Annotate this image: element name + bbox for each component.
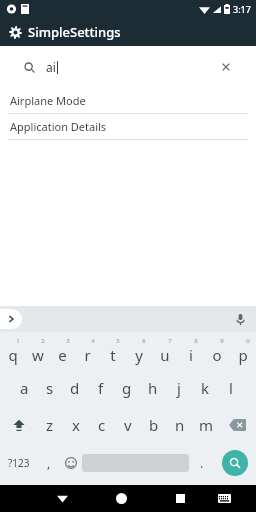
staticText: l xyxy=(229,378,233,398)
staticText: i xyxy=(189,345,193,365)
staticText: a xyxy=(20,378,29,398)
staticText: , xyxy=(47,455,51,471)
staticText: k xyxy=(201,378,210,398)
button[interactable]: b xyxy=(141,406,167,443)
button[interactable]: Application Details xyxy=(0,114,256,139)
button[interactable]: Backspace xyxy=(219,406,256,443)
other: Search xyxy=(24,62,35,73)
staticText: b xyxy=(149,415,159,435)
staticText: 7 xyxy=(168,337,172,345)
staticText: u xyxy=(160,345,170,365)
button[interactable]: f xyxy=(88,369,114,406)
button[interactable]: s xyxy=(37,369,62,406)
button[interactable]: 4 xyxy=(75,332,100,369)
button[interactable]: Expand suggestions xyxy=(0,309,22,329)
button[interactable]: g xyxy=(114,369,140,406)
button[interactable]: 8 xyxy=(178,332,204,369)
staticText: q xyxy=(8,345,18,365)
staticText: w xyxy=(32,345,44,365)
staticText: 0 xyxy=(246,337,250,345)
button[interactable]: x xyxy=(63,406,89,443)
button[interactable]: Back xyxy=(46,485,79,512)
button[interactable]: 9 xyxy=(204,332,230,369)
button[interactable]: 0 xyxy=(230,332,256,369)
staticText: j xyxy=(177,378,181,398)
staticText: . xyxy=(200,455,204,471)
button[interactable]: Emoji xyxy=(60,443,82,483)
button[interactable]: l xyxy=(218,369,244,406)
staticText: s xyxy=(46,378,54,398)
staticText: g xyxy=(122,378,132,398)
staticText: SimpleSettings xyxy=(28,23,121,41)
staticText: z xyxy=(46,415,54,435)
button[interactable]: k xyxy=(192,369,218,406)
button[interactable]: 7 xyxy=(152,332,178,369)
button[interactable]: Search xyxy=(14,53,242,81)
staticText: 9 xyxy=(220,337,224,345)
staticText: ai xyxy=(46,59,56,75)
button[interactable]: Recent apps xyxy=(164,485,197,512)
button[interactable]: ?123 xyxy=(0,443,38,483)
staticText: n xyxy=(175,415,185,435)
button[interactable]: d xyxy=(62,369,88,406)
button[interactable]: v xyxy=(115,406,141,443)
staticText: e xyxy=(58,345,67,365)
staticText: 2 xyxy=(41,337,45,345)
button[interactable]: Shift xyxy=(0,406,37,443)
button[interactable]: Clear search xyxy=(220,61,232,73)
staticText: x xyxy=(72,415,80,435)
button[interactable]: Airplane Mode xyxy=(0,88,256,113)
button[interactable]: a xyxy=(12,369,37,406)
staticText: h xyxy=(148,378,158,398)
button[interactable]: m xyxy=(193,406,219,443)
staticText: y xyxy=(135,345,143,365)
staticText: 8 xyxy=(194,337,198,345)
staticText: p xyxy=(238,345,248,365)
button[interactable]: c xyxy=(89,406,115,443)
staticText: 1 xyxy=(16,337,20,345)
staticText: Application Details xyxy=(10,119,107,134)
staticText: m xyxy=(199,415,214,435)
button[interactable]: 2 xyxy=(25,332,50,369)
button[interactable]: n xyxy=(167,406,193,443)
button[interactable]: Voice input xyxy=(232,311,248,327)
staticText: o xyxy=(212,345,222,365)
staticText: 5 xyxy=(116,337,120,345)
staticText: 3 xyxy=(66,337,70,345)
staticText: t xyxy=(110,345,116,365)
staticText: r xyxy=(84,345,91,365)
staticText: Airplane Mode xyxy=(10,93,86,108)
staticText: d xyxy=(70,378,80,398)
button[interactable]: 6 xyxy=(126,332,152,369)
button[interactable]: h xyxy=(140,369,166,406)
button[interactable]: Search xyxy=(222,450,248,476)
staticText: c xyxy=(98,415,106,435)
staticText: 6 xyxy=(142,337,146,345)
staticText: 4 xyxy=(91,337,95,345)
button[interactable]: Switch keyboard xyxy=(208,485,241,512)
button[interactable]: 5 xyxy=(100,332,126,369)
button[interactable]: z xyxy=(37,406,63,443)
button[interactable]: 1 xyxy=(0,332,25,369)
staticText: f xyxy=(98,378,104,398)
staticText: 3:17 xyxy=(233,3,251,15)
button[interactable]: . xyxy=(189,443,214,483)
button[interactable]: Home xyxy=(105,485,138,512)
staticText: ?123 xyxy=(8,456,30,470)
button[interactable]: , xyxy=(38,443,60,483)
button[interactable]: 3 xyxy=(50,332,75,369)
button[interactable]: j xyxy=(166,369,192,406)
staticText: v xyxy=(124,415,132,435)
